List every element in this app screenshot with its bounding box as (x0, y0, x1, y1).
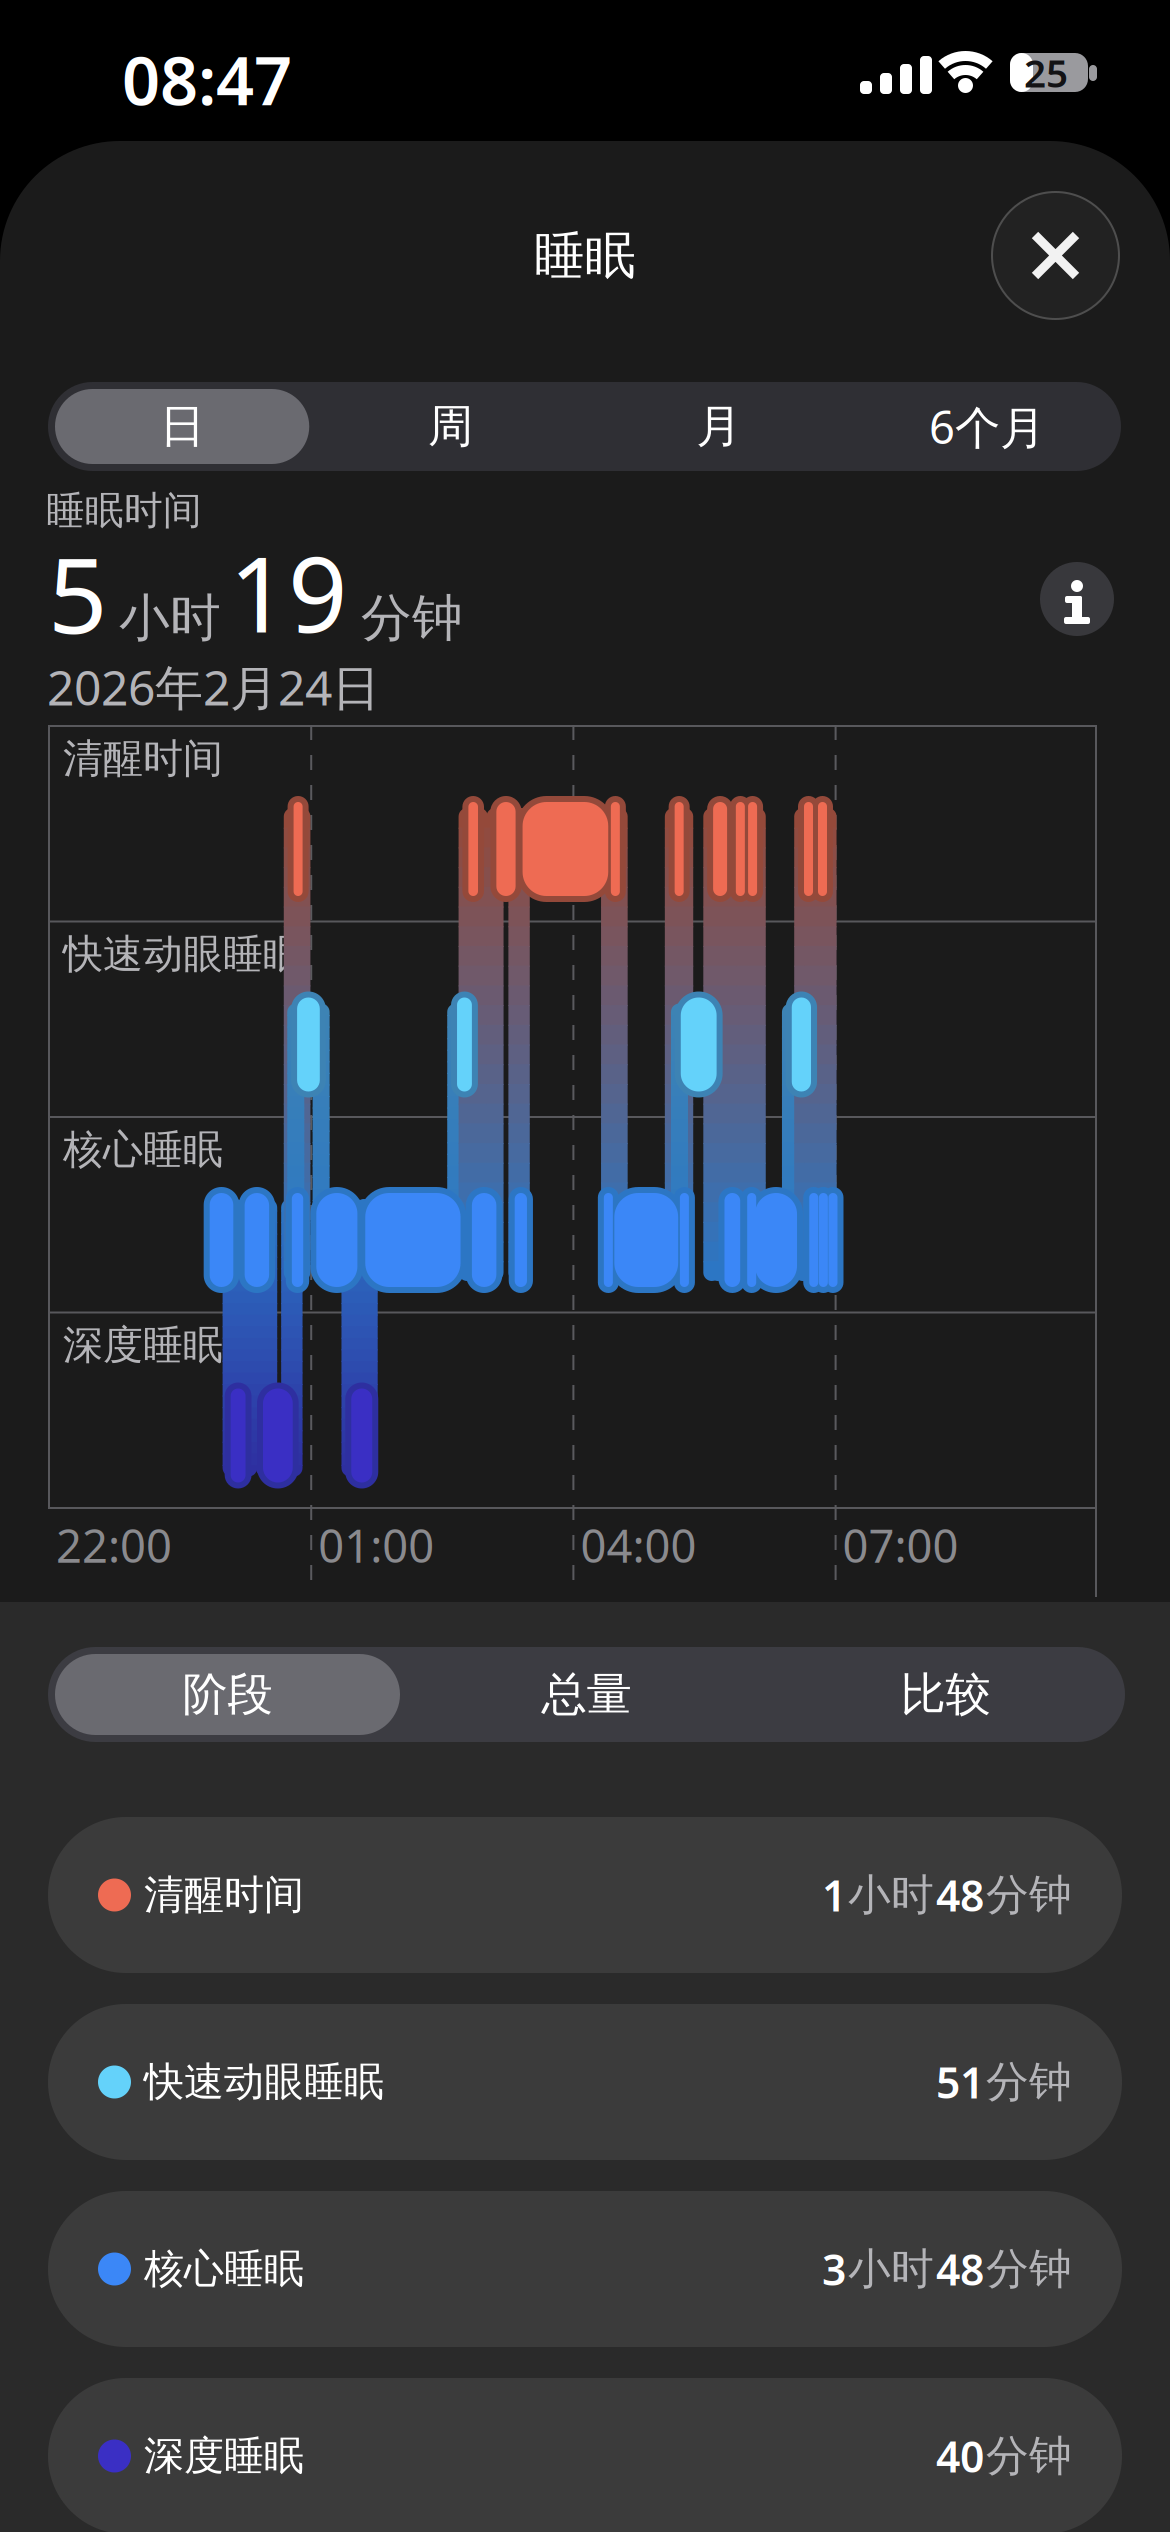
staticText: 分钟 (986, 1869, 1072, 1921)
button[interactable]: 深度睡眠 (48, 2378, 1122, 2532)
staticText: 3 (822, 2241, 846, 2297)
staticText: 核心睡眠 (63, 1125, 223, 1174)
staticText: 分钟 (986, 2430, 1072, 2482)
button[interactable]: 6个月 (853, 382, 1121, 471)
staticText: 分钟 (986, 2243, 1072, 2295)
button[interactable]: 日 (48, 382, 316, 471)
staticText: 1 (822, 1867, 846, 1923)
staticText: 快速动眼睡眠 (144, 2057, 384, 2106)
staticText: 01:00 (318, 1515, 434, 1575)
staticText: 分钟 (986, 2056, 1072, 2108)
staticText: 22:00 (56, 1515, 172, 1575)
staticText: 2026年2月24日 (47, 655, 380, 719)
staticText: 快速动眼睡眠 (63, 929, 303, 979)
staticText: 比较 (900, 1667, 990, 1722)
staticText: 25 (1024, 47, 1068, 98)
staticText: 40 (936, 2428, 984, 2484)
staticText: 19 (229, 523, 347, 661)
button[interactable]: 关闭 (991, 191, 1120, 320)
staticText: 小时 (848, 1869, 934, 1921)
staticText: 07:00 (843, 1515, 959, 1575)
staticText: 深度睡眠 (144, 2431, 304, 2480)
staticText: 阶段 (182, 1667, 272, 1722)
button[interactable]: 阶段 (48, 1647, 407, 1742)
staticText: 51 (936, 2054, 984, 2110)
staticText: 月 (696, 399, 741, 454)
button[interactable]: 比较 (766, 1647, 1125, 1742)
staticText: 小时 (119, 587, 221, 649)
staticText: 睡眠时间 (46, 487, 202, 534)
staticText: 48 (936, 2241, 984, 2297)
staticText: 核心睡眠 (144, 2244, 304, 2293)
button[interactable]: 信息 (1040, 562, 1114, 636)
staticText: 5 (48, 524, 107, 662)
button[interactable]: 核心睡眠 (48, 2191, 1122, 2347)
staticText: 日 (160, 399, 205, 454)
staticText: 清醒时间 (63, 734, 223, 783)
button[interactable]: 清醒时间 (48, 1817, 1122, 1973)
staticText: 深度睡眠 (63, 1320, 223, 1370)
staticText: 周 (428, 399, 473, 454)
staticText: 总量 (541, 1667, 631, 1722)
staticText: 分钟 (361, 587, 463, 649)
button[interactable]: 快速动眼睡眠 (48, 2004, 1122, 2160)
staticText: 小时 (848, 2243, 934, 2295)
staticText: 48 (936, 1867, 984, 1923)
button[interactable]: 周 (316, 382, 584, 471)
staticText: 08:47 (122, 35, 292, 123)
staticText: 睡眠 (534, 225, 636, 287)
staticText: 04:00 (580, 1515, 696, 1575)
button[interactable]: 月 (584, 382, 853, 471)
staticText: 清醒时间 (144, 1870, 304, 1919)
button[interactable]: 总量 (407, 1647, 766, 1742)
staticText: 6个月 (929, 396, 1045, 457)
